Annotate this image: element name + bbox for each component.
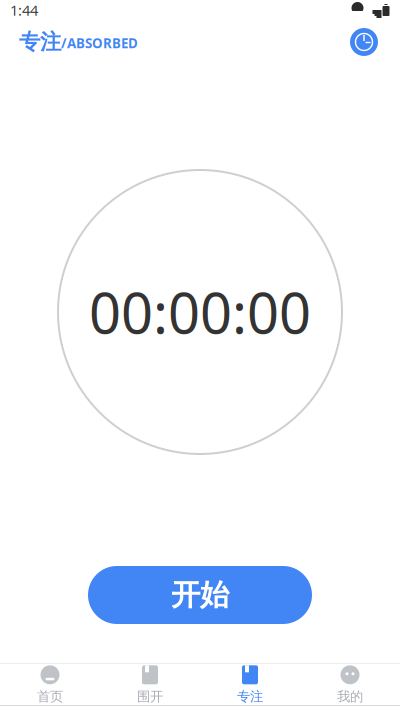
staticText: 专注	[237, 688, 263, 705]
button[interactable]: 开始	[88, 566, 312, 624]
button[interactable]: 围开	[100, 663, 200, 705]
button[interactable]: 我的	[300, 663, 400, 705]
button[interactable]: 首页	[0, 663, 100, 705]
staticText: /ABSORBED	[61, 34, 138, 52]
button[interactable]: 专注	[200, 663, 300, 705]
staticText: 专注	[19, 29, 61, 55]
staticText: 00:00:00	[89, 275, 311, 349]
button[interactable]: 专注记录	[347, 25, 381, 59]
staticText: 围开	[137, 688, 163, 705]
staticText: 首页	[37, 688, 63, 705]
staticText: 我的	[337, 688, 363, 705]
staticText: 开始	[171, 577, 229, 613]
staticText: 1:44	[10, 0, 38, 20]
